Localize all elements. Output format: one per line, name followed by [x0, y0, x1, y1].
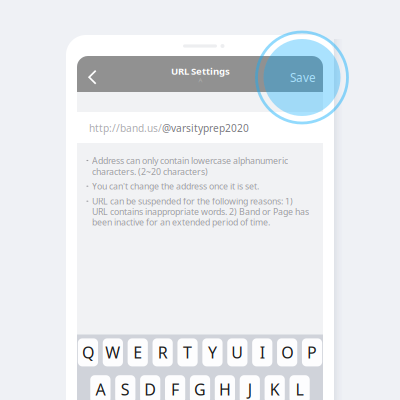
button[interactable]: F	[165, 375, 185, 400]
button[interactable]: P	[302, 338, 322, 366]
button[interactable]: T	[177, 338, 198, 366]
staticText: You can't change the address once it is …	[92, 180, 259, 192]
button[interactable]: W	[103, 338, 123, 366]
staticText: U	[231, 341, 243, 363]
staticText: H	[219, 378, 231, 400]
staticText: characters. (2~20 characters)	[92, 166, 208, 178]
staticText: Save	[290, 69, 316, 85]
button[interactable]: S	[115, 375, 135, 400]
button[interactable]: L	[289, 375, 310, 400]
button[interactable]: K	[265, 375, 285, 400]
staticText: Address can only contain lowercase alpha…	[92, 154, 288, 166]
staticText: URL Settings	[171, 64, 230, 78]
button[interactable]: Back	[79, 62, 105, 92]
staticText: been inactive for an extended period of …	[92, 216, 270, 228]
staticText: G	[194, 378, 206, 400]
staticText: K	[270, 378, 280, 400]
button[interactable]: R	[153, 338, 173, 366]
button[interactable]: J	[240, 375, 260, 400]
button[interactable]: D	[140, 375, 160, 400]
button[interactable]: Q	[78, 338, 98, 366]
staticText: D	[144, 378, 156, 400]
staticText: T	[183, 341, 192, 363]
staticText: URL contains inappropriate words. 2) Ban…	[92, 205, 309, 217]
staticText: O	[281, 341, 293, 363]
staticText: R	[158, 341, 168, 363]
staticText: W	[105, 341, 120, 363]
button[interactable]: I	[252, 338, 272, 366]
button[interactable]: A	[90, 375, 110, 400]
button[interactable]: H	[215, 375, 235, 400]
staticText: A	[95, 378, 105, 400]
staticText: S	[121, 378, 130, 400]
staticText: E	[133, 341, 142, 363]
button[interactable]: E	[128, 338, 148, 366]
button[interactable]: U	[227, 338, 247, 366]
button[interactable]: G	[190, 375, 210, 400]
staticText: J	[248, 378, 252, 400]
staticText: I	[260, 341, 265, 363]
staticText: F	[171, 378, 179, 400]
staticText: Q	[82, 341, 94, 363]
button[interactable]: Y	[202, 338, 223, 366]
staticText: URL can be suspended for the following r…	[92, 195, 293, 207]
staticText: L	[296, 378, 304, 400]
button[interactable]: O	[277, 338, 297, 366]
staticText: @varsityprep2020	[162, 121, 249, 135]
staticText: P	[307, 341, 317, 363]
staticText: A	[198, 76, 202, 84]
button[interactable]: Save	[277, 62, 329, 92]
staticText: http://band.us/	[89, 121, 162, 135]
staticText: Y	[208, 341, 217, 363]
